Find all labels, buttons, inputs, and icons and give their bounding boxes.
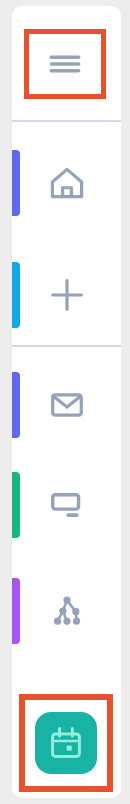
button[interactable]: Display: [12, 472, 121, 538]
button[interactable]: Home: [12, 150, 121, 216]
button[interactable]: Calendar: [25, 700, 107, 786]
button[interactable]: Mail: [12, 372, 121, 438]
button[interactable]: Menu: [29, 34, 101, 94]
button[interactable]: Add: [12, 262, 121, 328]
button[interactable]: Hierarchy: [12, 578, 121, 644]
